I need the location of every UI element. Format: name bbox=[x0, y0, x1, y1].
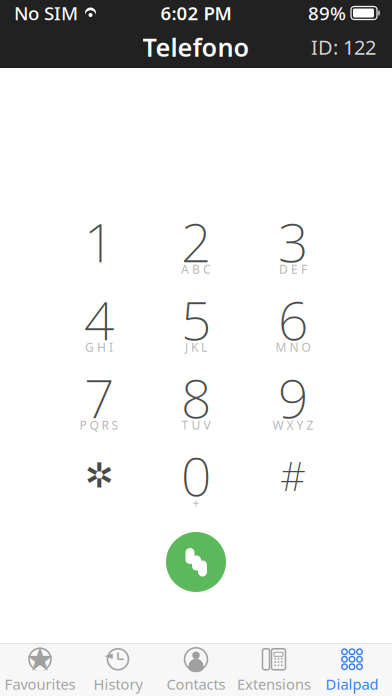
staticText: D E F bbox=[279, 261, 307, 277]
button[interactable]: ✲ bbox=[51, 448, 147, 514]
staticText: # bbox=[280, 449, 306, 502]
staticText: M N O bbox=[275, 339, 310, 355]
staticText: Favourites bbox=[4, 674, 75, 694]
staticText: 8 bbox=[181, 362, 211, 433]
staticText: T U V bbox=[181, 417, 210, 433]
staticText: ★ bbox=[25, 640, 55, 678]
button[interactable]: 3 bbox=[245, 214, 341, 280]
staticText: 4 bbox=[84, 284, 114, 355]
button[interactable]: 0 bbox=[148, 448, 244, 514]
button[interactable]: 8 bbox=[148, 370, 244, 436]
staticText: ✲ bbox=[84, 456, 113, 495]
button[interactable]: ◄ bbox=[79, 645, 157, 694]
button[interactable]: # bbox=[245, 448, 341, 514]
button[interactable]: Call bbox=[166, 532, 226, 592]
staticText: A B C bbox=[181, 261, 211, 277]
button[interactable]: 9 bbox=[245, 370, 341, 436]
staticText: ID: 122 bbox=[311, 34, 376, 60]
button[interactable]: ID: 122 bbox=[305, 28, 382, 66]
button[interactable]: Extensions bbox=[235, 645, 313, 694]
staticText: 2 bbox=[181, 206, 211, 277]
staticText: No SIM bbox=[14, 1, 78, 25]
button[interactable]: 1 bbox=[51, 214, 147, 280]
button[interactable]: 5 bbox=[148, 292, 244, 358]
staticText: 3 bbox=[278, 206, 308, 277]
staticText: 89% bbox=[308, 1, 346, 25]
button[interactable]: 4 bbox=[51, 292, 147, 358]
staticText: 6 bbox=[278, 284, 308, 355]
staticText: P Q R S bbox=[79, 417, 118, 433]
staticText: W X Y Z bbox=[272, 417, 313, 433]
button[interactable]: 7 bbox=[51, 370, 147, 436]
staticText: Telefono bbox=[142, 30, 249, 64]
staticText: ◄ bbox=[104, 649, 112, 661]
staticText: Contacts bbox=[166, 674, 225, 694]
button[interactable]: Contacts bbox=[157, 645, 235, 694]
staticText: 6:02 PM bbox=[160, 1, 231, 25]
button[interactable]: Dialpad bbox=[313, 645, 391, 694]
staticText: J K L bbox=[185, 339, 207, 355]
staticText: Dialpad bbox=[325, 674, 378, 694]
staticText: G H I bbox=[85, 339, 113, 355]
button[interactable]: 6 bbox=[245, 292, 341, 358]
staticText: Extensions bbox=[237, 674, 311, 694]
button[interactable]: ★ bbox=[1, 645, 79, 694]
staticText: + bbox=[192, 495, 199, 511]
staticText: 5 bbox=[181, 284, 211, 355]
staticText: 1 bbox=[84, 206, 114, 277]
staticText: 7 bbox=[84, 362, 114, 433]
staticText: History bbox=[93, 674, 142, 694]
button[interactable]: 2 bbox=[148, 214, 244, 280]
staticText: 9 bbox=[278, 362, 308, 433]
staticText: 0 bbox=[181, 440, 211, 511]
